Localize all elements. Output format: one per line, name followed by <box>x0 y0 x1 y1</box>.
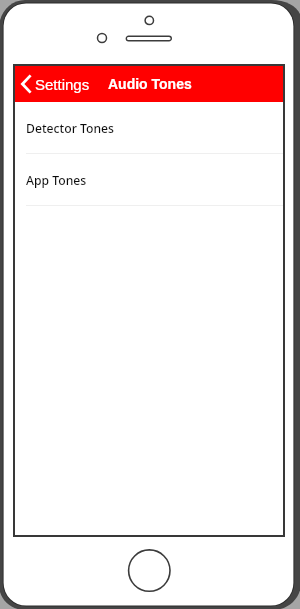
button[interactable]: Detector Tones <box>15 102 283 154</box>
staticText: App Tones <box>26 172 87 189</box>
button[interactable]: App Tones <box>15 154 283 206</box>
staticText: Settings <box>35 76 90 93</box>
button[interactable]: Settings <box>15 69 98 99</box>
staticText: Detector Tones <box>26 120 114 137</box>
staticText: Audio Tones <box>108 76 192 92</box>
